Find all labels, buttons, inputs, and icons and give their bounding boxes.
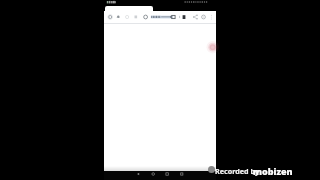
staticText: mobizen	[253, 165, 293, 177]
staticText: Recorded by	[215, 166, 260, 176]
button[interactable]: Browser tab	[105, 6, 153, 12]
